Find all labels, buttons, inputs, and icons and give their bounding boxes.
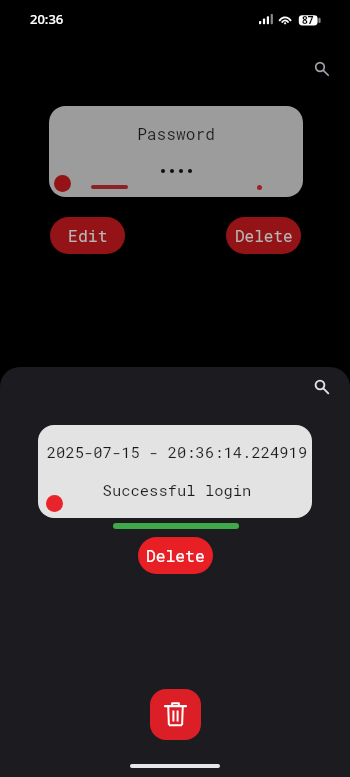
staticText: 2025-07-15 - 20:36:14.224919 <box>40 442 312 462</box>
staticText: Delete <box>235 225 293 246</box>
button[interactable]: Delete <box>138 537 213 574</box>
button[interactable]: Password <box>49 106 303 197</box>
button[interactable]: Delete <box>226 217 301 254</box>
staticText: Password <box>49 123 303 144</box>
button[interactable]: 2025-07-15 - 20:36:14.224919 <box>38 425 312 518</box>
button[interactable]: Search <box>309 56 335 82</box>
button[interactable]: Delete all <box>150 689 201 740</box>
staticText: Delete <box>146 545 205 566</box>
staticText: 20:36 <box>30 10 64 28</box>
staticText: Successful login <box>40 480 312 500</box>
button[interactable]: Edit <box>50 217 125 254</box>
staticText: 87 <box>302 13 314 27</box>
button[interactable]: Search <box>309 374 335 400</box>
staticText: Edit <box>68 225 108 247</box>
